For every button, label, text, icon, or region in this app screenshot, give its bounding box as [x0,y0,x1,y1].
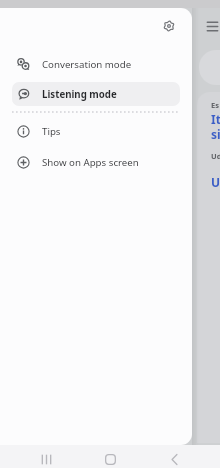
staticText: U [211,174,220,190]
button[interactable]: Listening mode [12,82,180,106]
staticText: Tips [42,125,61,138]
staticText: Listening mode [42,88,117,101]
button[interactable]: Home [94,445,127,468]
button[interactable]: Recents [30,445,63,468]
staticText: Es [211,100,219,110]
button[interactable]: Back [158,445,191,468]
staticText: si [211,126,220,142]
staticText: Conversation mode [42,58,132,71]
staticText: Ud [211,151,220,161]
staticText: Show on Apps screen [42,156,139,169]
button[interactable]: Menu [201,15,220,37]
staticText: It [211,111,220,127]
button[interactable]: Tips [12,119,180,143]
button[interactable]: Settings [155,12,183,40]
button[interactable]: Show on Apps screen [12,150,180,174]
button[interactable]: Conversation mode [12,52,180,76]
